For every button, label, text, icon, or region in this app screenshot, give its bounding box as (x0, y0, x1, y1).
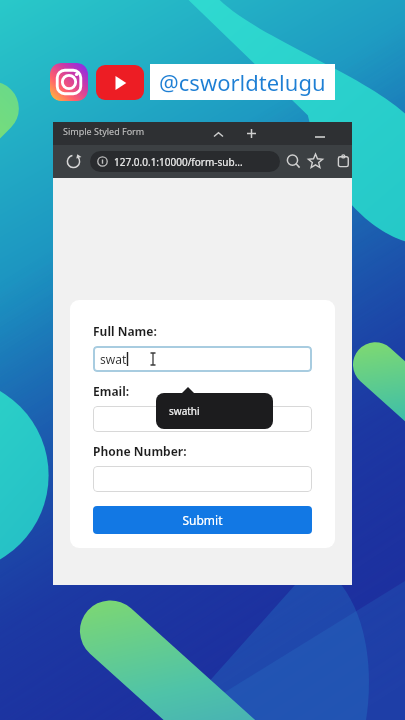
button[interactable]: Bookmark (307, 153, 324, 170)
button[interactable]: swat (93, 346, 312, 372)
staticText: Email: (93, 383, 130, 399)
staticText: Submit (182, 512, 223, 528)
button[interactable]: Extensions (335, 153, 352, 170)
button[interactable]: 127.0.0.1:10000/form-sub... (90, 151, 280, 172)
staticText: @csworldtelugu (159, 67, 326, 97)
button[interactable]: Reload (65, 153, 82, 170)
staticText: Full Name: (93, 323, 157, 339)
staticText: 127.0.0.1:10000/form-sub... (114, 155, 243, 169)
button[interactable] (93, 466, 312, 492)
button[interactable]: swathi (156, 393, 273, 429)
button[interactable] (93, 406, 312, 432)
staticText: swathi (169, 404, 200, 418)
button[interactable]: New tab (233, 122, 269, 145)
button[interactable]: Submit (93, 506, 312, 534)
staticText: Phone Number: (93, 443, 187, 459)
staticText: swat (100, 351, 127, 367)
button[interactable]: Instagram (50, 63, 88, 101)
button[interactable]: Search (285, 153, 302, 170)
button[interactable]: YouTube (96, 65, 144, 100)
staticText: Simple Styled Form (63, 125, 145, 137)
